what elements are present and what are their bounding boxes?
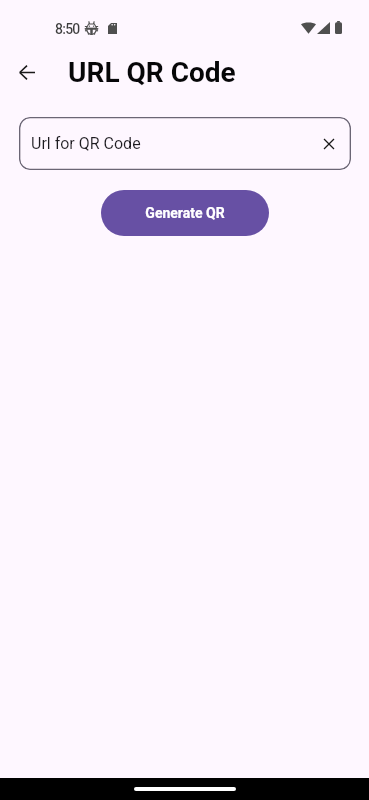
button[interactable]: Url for QR Code [19,117,351,170]
staticText: Generate QR [145,205,225,221]
staticText: URL QR Code [68,56,236,89]
button[interactable]: Clear text [312,127,346,161]
staticText: 8:50 [55,21,80,37]
button[interactable]: Back [6,52,47,93]
staticText: Url for QR Code [31,134,141,153]
button[interactable]: Generate QR [101,190,269,236]
